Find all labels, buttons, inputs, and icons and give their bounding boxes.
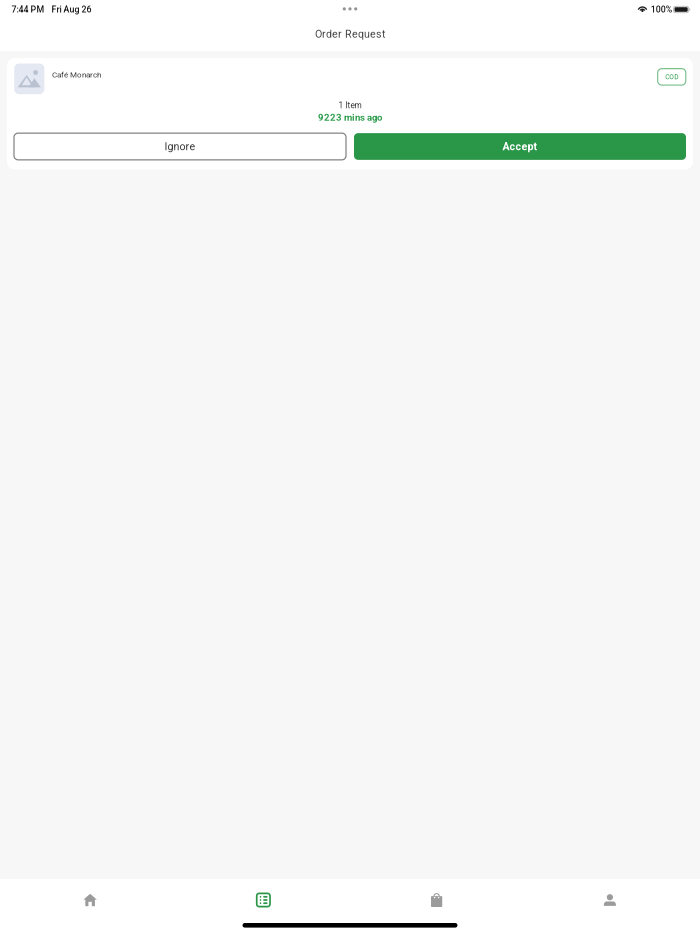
button[interactable]: Shop [350,879,523,921]
staticText: Café Monarch [52,70,101,80]
button[interactable]: Accept [354,133,686,160]
staticText: Order Request [315,28,385,40]
staticText: COD [665,73,678,81]
staticText: 7:44 PM [11,4,44,15]
button[interactable]: Orders [177,879,350,921]
staticText: 100% [651,4,672,15]
staticText: 1 Item [338,101,361,110]
button[interactable]: Ignore [14,133,346,160]
button[interactable]: Profile [523,879,696,921]
staticText: Ignore [164,140,195,153]
button[interactable]: Home [3,879,177,921]
staticText: Accept [502,140,537,153]
staticText: 9223 mins ago [318,112,382,123]
staticText: Fri Aug 26 [51,4,91,15]
